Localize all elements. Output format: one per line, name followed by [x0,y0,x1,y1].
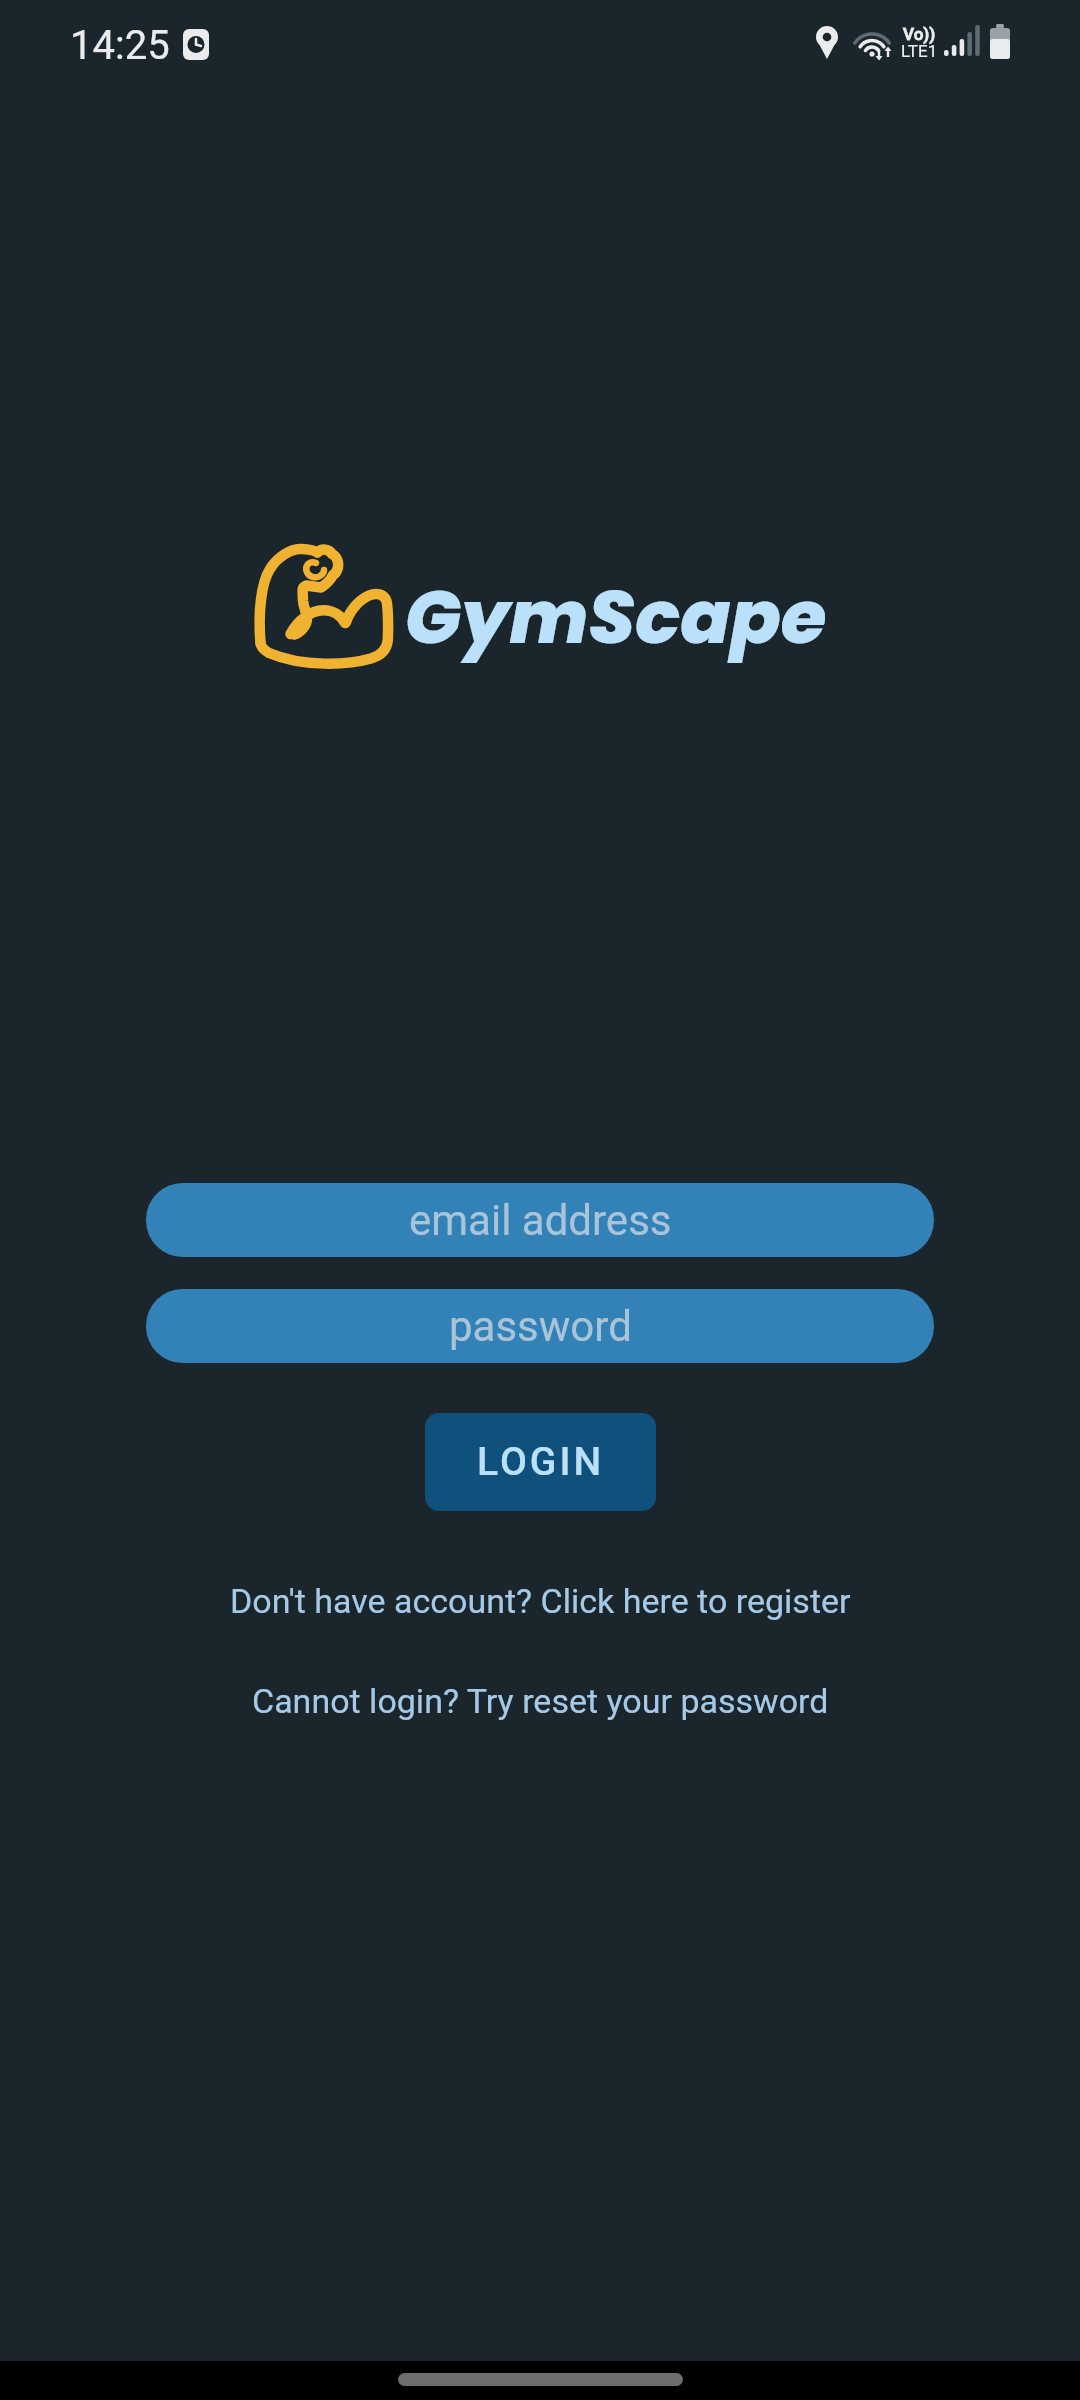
staticText: email address [409,1196,672,1245]
button[interactable]: email address [146,1183,934,1257]
staticText: Cannot login? Try reset your password [252,1681,829,1721]
button[interactable]: Don't have account? Click here to regist… [230,1581,851,1621]
staticText: GymScape [405,565,827,669]
button[interactable]: Cannot login? Try reset your password [252,1681,829,1721]
staticText: Vo)) [903,24,936,44]
staticText: LTE1 [901,41,938,61]
staticText: 14:25 [70,22,170,69]
staticText: Don't have account? Click here to regist… [230,1581,851,1621]
staticText: password [449,1302,632,1351]
button[interactable]: LOGIN [425,1413,656,1511]
button[interactable]: password [146,1289,934,1363]
staticText: LOGIN [477,1439,605,1485]
